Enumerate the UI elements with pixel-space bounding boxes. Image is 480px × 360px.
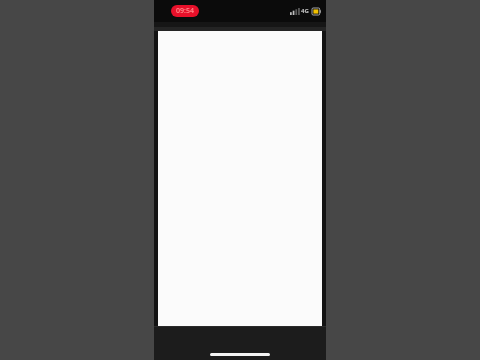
staticText: 4G bbox=[301, 7, 309, 15]
staticText: 09:54 bbox=[176, 6, 194, 16]
other: Battery level bbox=[312, 8, 321, 15]
button[interactable]: 09:54 bbox=[171, 5, 199, 17]
button[interactable]: Home gesture handle bbox=[210, 353, 270, 356]
other: Mobile signal strength bbox=[290, 8, 298, 15]
